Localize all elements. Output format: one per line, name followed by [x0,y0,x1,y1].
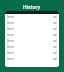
staticText: History [23,4,41,11]
staticText: val [53,21,57,25]
staticText: Item [7,15,14,19]
staticText: val [53,33,57,37]
staticText: val [53,27,57,31]
staticText: Item [7,57,14,61]
staticText: Item [7,21,14,25]
staticText: Item [7,51,14,55]
staticText: Item [7,39,14,43]
staticText: Item [7,33,14,37]
staticText: val [53,15,57,19]
staticText: Item [7,27,14,31]
staticText: val [53,45,57,49]
staticText: Item [7,45,14,49]
staticText: val [53,39,57,43]
staticText: val [53,51,57,55]
staticText: val [53,57,57,61]
